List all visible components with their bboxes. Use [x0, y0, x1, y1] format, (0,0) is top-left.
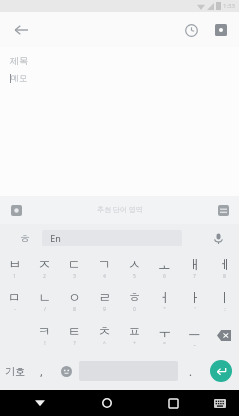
button[interactable]: ㅍ	[119, 318, 149, 352]
staticText: ㅅ	[128, 256, 141, 272]
staticText: /	[44, 306, 46, 313]
button[interactable]: More options	[213, 200, 233, 220]
button[interactable]: ㅔ	[209, 252, 239, 284]
button[interactable]: Reminder	[179, 18, 203, 42]
staticText: 3	[73, 273, 76, 280]
button[interactable]: ㄹ	[89, 284, 119, 318]
button[interactable]: ㅗ	[149, 252, 179, 284]
button[interactable]: 제목	[0, 47, 239, 196]
button[interactable]: Emoji	[54, 352, 79, 390]
staticText: ㅍ	[128, 323, 141, 339]
button[interactable]: ㅎ	[119, 284, 149, 318]
button[interactable]: Enter	[203, 352, 239, 390]
button[interactable]: ㅂ	[0, 252, 29, 284]
button[interactable]: Korean input	[14, 227, 36, 249]
staticText: ㅎ	[128, 289, 141, 305]
button[interactable]: ㅅ	[119, 252, 149, 284]
staticText: _	[193, 340, 196, 347]
staticText: 9	[103, 306, 106, 313]
button[interactable]: ㅁ	[0, 284, 29, 318]
staticText: ^	[103, 340, 106, 347]
button[interactable]: ㅐ	[179, 252, 209, 284]
staticText: ㄷ	[68, 256, 81, 272]
button[interactable]: Backspace	[209, 318, 239, 352]
staticText: ㅂ	[8, 256, 21, 272]
staticText: ㅣ	[218, 289, 231, 305]
button[interactable]: Keyboard settings	[6, 200, 26, 220]
staticText: 기호	[5, 365, 25, 378]
button[interactable]: ㄷ	[59, 252, 89, 284]
staticText: ㅁ	[8, 289, 21, 305]
button[interactable]: Home	[73, 390, 140, 416]
staticText: 2	[43, 273, 46, 280]
staticText: .	[189, 364, 192, 379]
staticText: ㄱ	[98, 256, 111, 272]
staticText: "	[163, 306, 166, 313]
staticText: ㅜ	[158, 323, 171, 339]
staticText: En	[50, 232, 61, 244]
staticText: ?	[73, 340, 76, 347]
button[interactable]: Back	[8, 17, 34, 43]
staticText: -	[14, 306, 16, 313]
staticText: ㅇ	[68, 289, 81, 305]
staticText: 4	[103, 273, 106, 280]
button[interactable]: Archive	[209, 18, 233, 42]
button[interactable]: ㅊ	[89, 318, 119, 352]
staticText: =	[163, 340, 166, 347]
button[interactable]: Recents	[140, 390, 207, 416]
staticText: ㅋ	[38, 323, 51, 339]
staticText: 7	[193, 273, 196, 280]
button[interactable]: .	[178, 352, 203, 390]
staticText: ㅡ	[188, 323, 201, 339]
button[interactable]: ㅇ	[59, 284, 89, 318]
staticText: :	[224, 306, 226, 313]
button[interactable]: ㅏ	[179, 284, 209, 318]
staticText: '	[194, 306, 196, 313]
staticText: 8	[73, 306, 76, 313]
staticText: 8	[223, 273, 226, 280]
button[interactable]: Switch keyboard	[207, 390, 233, 416]
staticText: ㅈ	[38, 256, 51, 272]
staticText: !	[44, 340, 46, 347]
staticText: 제목	[10, 55, 28, 66]
button[interactable]: ㅌ	[59, 318, 89, 352]
button[interactable]: ㄱ	[89, 252, 119, 284]
staticText: ㅏ	[188, 289, 201, 305]
button[interactable]: ㅋ	[29, 318, 59, 352]
button[interactable]: En	[42, 230, 182, 246]
staticText: ㅔ	[218, 256, 231, 272]
staticText: ㅗ	[158, 256, 171, 272]
staticText: +	[133, 340, 136, 347]
staticText: 1	[13, 273, 16, 280]
staticText: ㄴ	[38, 289, 51, 305]
staticText: 메모	[11, 73, 27, 83]
staticText: ㅎ	[19, 231, 31, 246]
button[interactable]: ㅡ	[179, 318, 209, 352]
button[interactable]: ㅓ	[149, 284, 179, 318]
button[interactable]: ㅈ	[29, 252, 59, 284]
staticText: 0	[133, 306, 136, 313]
staticText: 추천 단어 영역	[97, 205, 143, 215]
button[interactable]: 기호	[0, 352, 29, 390]
staticText: ,	[40, 364, 43, 379]
button[interactable]: ㅜ	[149, 318, 179, 352]
staticText: 6	[163, 273, 166, 280]
staticText: ㅓ	[158, 289, 171, 305]
button[interactable]: Voice input	[207, 227, 229, 249]
button[interactable]: Back	[6, 390, 73, 416]
staticText: ㅐ	[188, 256, 201, 272]
staticText: ㅊ	[98, 323, 111, 339]
button[interactable]: ,	[29, 352, 54, 390]
staticText: 5	[133, 273, 136, 280]
button[interactable]: ㄴ	[29, 284, 59, 318]
staticText: ㄹ	[98, 289, 111, 305]
staticText: ㅌ	[68, 323, 81, 339]
staticText: 1:33	[223, 2, 235, 10]
button[interactable]: ㅣ	[209, 284, 239, 318]
